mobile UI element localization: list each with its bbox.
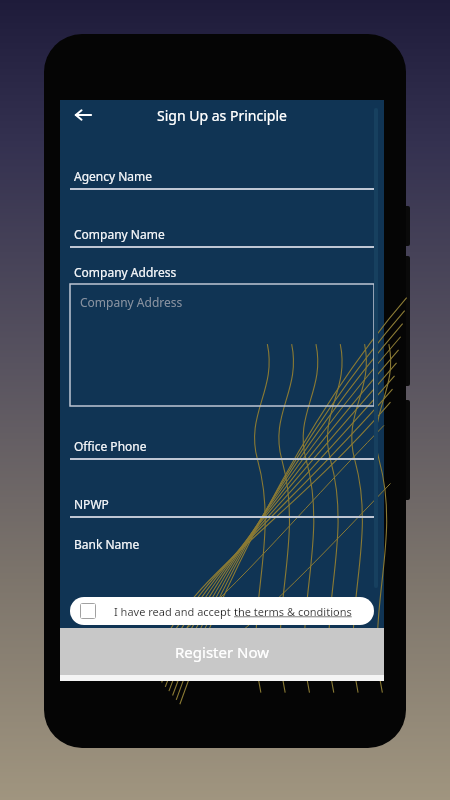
button[interactable]: Register Now — [60, 628, 384, 675]
button[interactable]: Back — [66, 100, 100, 130]
button[interactable]: I have read and accept — [70, 597, 374, 625]
staticText: NPWP — [74, 496, 109, 512]
staticText: Company Address — [74, 264, 177, 280]
button[interactable]: Company Name — [70, 226, 374, 248]
staticText: Agency Name — [74, 168, 153, 184]
staticText: Sign Up as Principle — [157, 106, 287, 125]
button[interactable]: the terms & conditions — [234, 604, 352, 619]
staticText: Bank Name — [74, 536, 140, 552]
button[interactable]: Company Address — [70, 264, 374, 406]
staticText: Office Phone — [74, 438, 147, 454]
staticText: Company Address — [80, 294, 183, 310]
staticText: Company Name — [74, 226, 165, 242]
button[interactable]: Office Phone — [70, 438, 374, 460]
staticText: Register Now — [175, 642, 270, 662]
button[interactable]: NPWP — [70, 496, 374, 518]
button[interactable]: Agency Name — [70, 168, 374, 190]
staticText: I have read and accept — [114, 604, 234, 619]
